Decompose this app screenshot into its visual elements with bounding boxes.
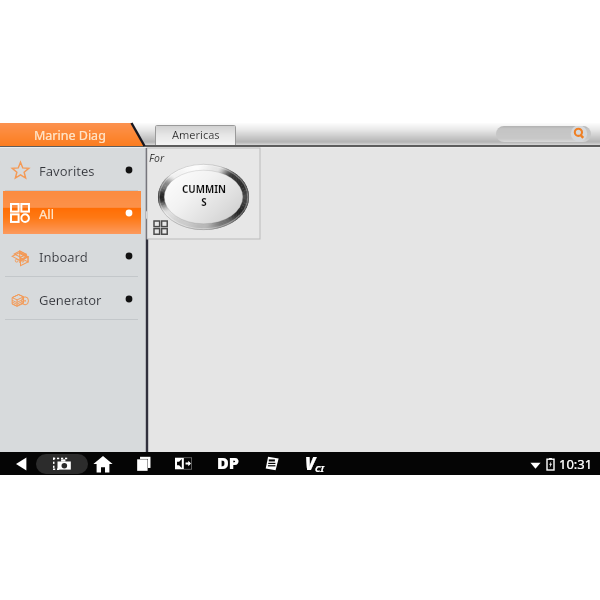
staticText: V — [305, 452, 316, 475]
staticText: CUMMIN — [182, 183, 226, 196]
button[interactable]: Recents — [132, 452, 156, 475]
staticText: Generator — [39, 291, 102, 309]
staticText: S — [201, 196, 207, 209]
button[interactable]: Search — [496, 126, 591, 142]
button[interactable]: Americas — [155, 125, 236, 145]
button[interactable]: Home — [91, 452, 115, 475]
staticText: 10:31 — [559, 455, 593, 473]
button[interactable]: Reports — [259, 452, 283, 475]
staticText: Favorites — [39, 162, 95, 180]
button[interactable]: Generator — [0, 277, 146, 320]
button[interactable]: Favorites — [0, 148, 146, 191]
staticText: Americas — [172, 127, 220, 142]
staticText: All — [39, 205, 55, 223]
staticText: CI — [315, 462, 324, 474]
button[interactable]: V — [298, 452, 332, 475]
button[interactable]: Inboard — [0, 234, 146, 277]
button[interactable]: Back — [10, 452, 34, 475]
staticText: Inboard — [39, 248, 88, 266]
staticText: Marine Diag — [34, 127, 106, 144]
button[interactable]: Screenshot — [36, 454, 88, 474]
button[interactable]: For — [147, 148, 260, 239]
button[interactable]: All — [0, 191, 146, 234]
staticText: DP — [217, 452, 239, 474]
button[interactable]: DP — [212, 452, 244, 475]
button[interactable]: Sound — [171, 452, 195, 475]
staticText: For — [149, 151, 165, 165]
